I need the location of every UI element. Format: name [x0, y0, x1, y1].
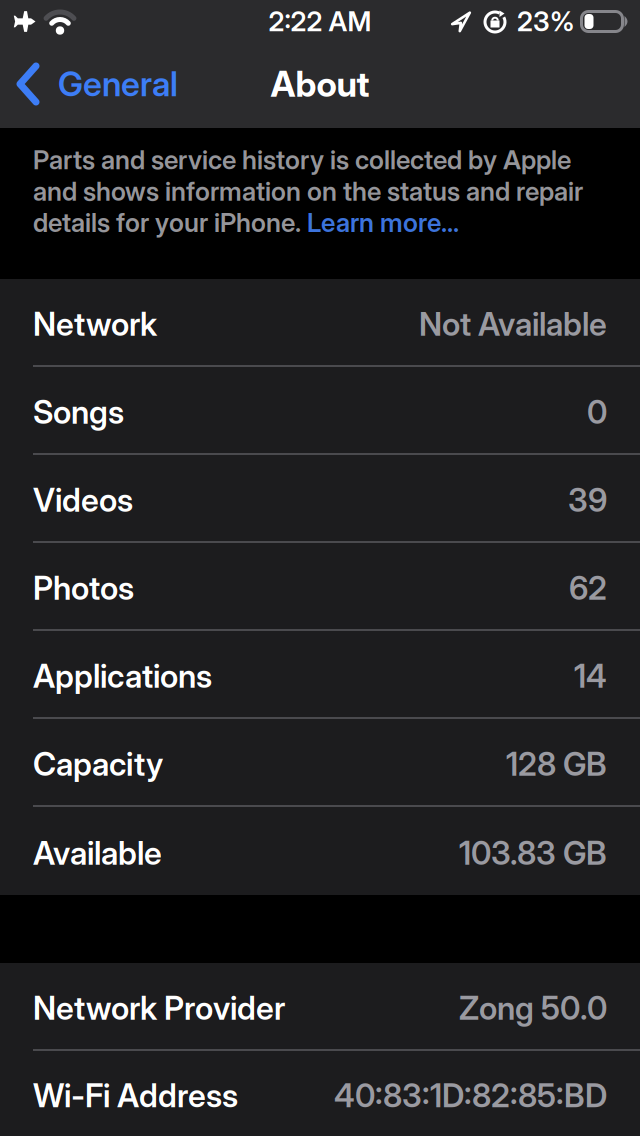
staticText: Available — [33, 834, 162, 872]
staticText: 2:22 AM — [268, 5, 371, 38]
button[interactable]: Learn more... — [307, 207, 459, 238]
staticText: About — [270, 63, 369, 105]
staticText: Zong 50.0 — [459, 989, 607, 1027]
staticText: Wi-Fi Address — [33, 1076, 238, 1115]
button[interactable]: General — [0, 63, 178, 105]
staticText: 40:83:1D:82:85:BD — [334, 1076, 607, 1115]
staticText: details for your iPhone. — [33, 207, 307, 238]
staticText: and shows information on the status and … — [33, 175, 583, 207]
staticText: General — [58, 63, 178, 104]
staticText: Not Available — [419, 305, 607, 343]
staticText: Songs — [33, 393, 124, 431]
staticText: 103.83 GB — [459, 834, 607, 872]
staticText: Network Provider — [33, 989, 285, 1027]
staticText: Capacity — [33, 745, 163, 783]
staticText: Videos — [33, 481, 133, 519]
staticText: Parts and service history is collected b… — [33, 144, 571, 175]
staticText: Network — [33, 305, 157, 343]
staticText: 128 GB — [506, 745, 607, 783]
staticText: Photos — [33, 569, 134, 607]
staticText: 62 — [569, 569, 607, 607]
staticText: 39 — [568, 481, 607, 519]
staticText: Learn more... — [307, 207, 459, 238]
staticText: Applications — [33, 657, 212, 695]
staticText: 0 — [587, 393, 607, 431]
staticText: 23% — [517, 5, 574, 38]
staticText: 14 — [574, 657, 607, 695]
